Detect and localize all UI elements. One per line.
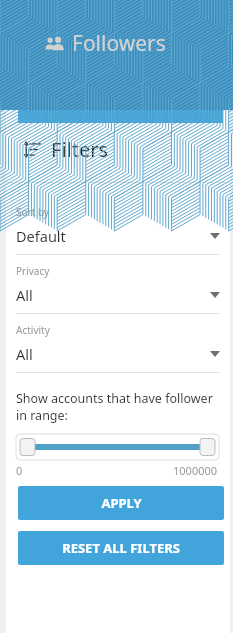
staticText: All xyxy=(16,344,33,364)
button[interactable]: Activity xyxy=(6,323,230,382)
staticText: Followers xyxy=(72,29,166,58)
button[interactable]: Privacy xyxy=(6,264,230,323)
other: Expand Activity xyxy=(210,351,220,357)
staticText: Activity xyxy=(16,323,50,337)
staticText: 0 xyxy=(16,463,23,478)
staticText: APPLY xyxy=(101,494,142,512)
staticText: Sort by xyxy=(16,205,49,219)
staticText: Filters xyxy=(51,136,109,163)
staticText: Show accounts that have follower in rang… xyxy=(16,390,214,424)
staticText: 1000000 xyxy=(173,463,218,478)
button[interactable]: Follower range slider xyxy=(16,434,219,460)
button[interactable]: Sort by xyxy=(6,205,230,264)
button[interactable]: RESET ALL FILTERS xyxy=(18,531,224,565)
staticText: All xyxy=(16,285,33,305)
staticText: Default xyxy=(16,226,66,246)
other: Expand Sort by xyxy=(210,233,220,239)
other: Expand Privacy xyxy=(210,292,220,298)
button[interactable]: APPLY xyxy=(18,486,224,520)
staticText: Privacy xyxy=(16,264,50,278)
staticText: RESET ALL FILTERS xyxy=(62,539,180,557)
